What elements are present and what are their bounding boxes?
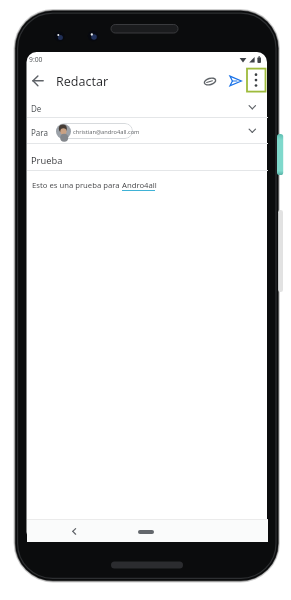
staticText: Para xyxy=(31,127,48,138)
button[interactable] xyxy=(247,69,265,91)
staticText: Redactar xyxy=(56,73,109,90)
button[interactable] xyxy=(56,123,133,139)
button[interactable] xyxy=(225,71,245,91)
staticText: De xyxy=(31,103,42,114)
staticText: Andro4all xyxy=(122,180,157,190)
staticText: christian@andro4all.com xyxy=(73,128,140,136)
button[interactable] xyxy=(200,71,220,91)
button[interactable] xyxy=(28,71,48,91)
staticText: 9:00 xyxy=(29,55,43,64)
staticText: Prueba xyxy=(31,154,63,167)
button[interactable] xyxy=(138,530,154,534)
button[interactable] xyxy=(27,171,268,197)
button[interactable] xyxy=(27,95,268,117)
staticText: Esto es una prueba para xyxy=(32,180,122,190)
button[interactable] xyxy=(27,144,268,170)
button[interactable] xyxy=(64,522,84,540)
